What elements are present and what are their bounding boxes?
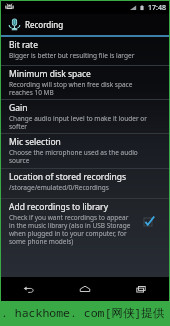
staticText: Bigger is better but resulting file is l… — [9, 51, 135, 60]
staticText: Gain — [9, 102, 28, 114]
staticText: Mic selection — [9, 136, 61, 148]
staticText: Change audio input level to make it loud… — [9, 114, 149, 131]
staticText: Add recordings to library — [9, 201, 108, 213]
staticText: . hackhome. com[网侠]提供 — [1, 305, 165, 321]
button[interactable]: Add recordings to library — [1, 199, 169, 249]
staticText: Check if you want recordings to appear i… — [9, 213, 133, 246]
staticText: Choose the microphone used as the audio … — [9, 148, 147, 165]
staticText: Recording will stop when free disk space… — [9, 80, 147, 97]
button[interactable]: Mic selection — [1, 134, 169, 169]
button[interactable]: Minimum disk space — [1, 66, 169, 100]
button[interactable]: Gain — [1, 100, 169, 134]
button[interactable]: Location of stored recordings — [1, 169, 169, 199]
staticText: Recording — [25, 19, 64, 30]
staticText: 17:48 — [148, 3, 166, 13]
button[interactable]: Recording — [1, 14, 169, 35]
staticText: Bit rate — [9, 39, 38, 51]
staticText: /storage/emulated/0/Recordings — [9, 183, 109, 192]
staticText: Location of stored recordings — [9, 171, 127, 183]
button[interactable]: Home — [57, 277, 113, 301]
button[interactable]: Recent apps — [113, 277, 169, 301]
button[interactable]: Bit rate — [1, 37, 169, 66]
staticText: Minimum disk space — [9, 68, 91, 80]
button[interactable]: Back — [1, 277, 57, 301]
